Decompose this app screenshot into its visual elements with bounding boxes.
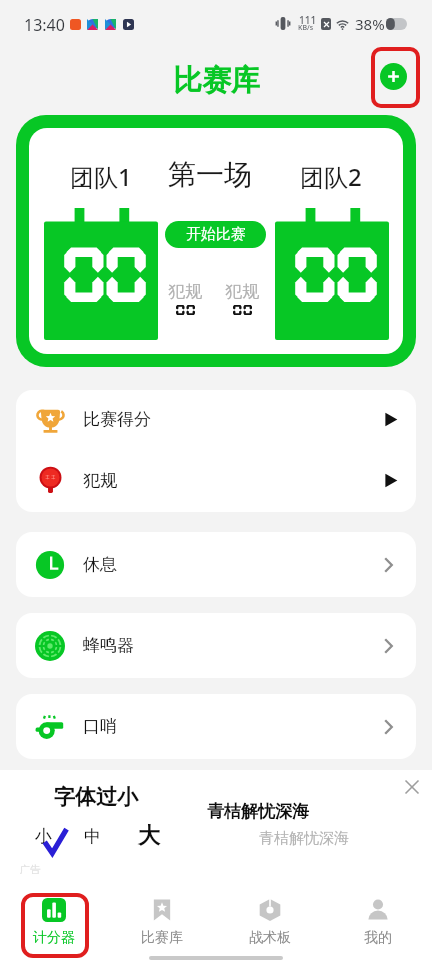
button[interactable]	[44, 208, 158, 340]
staticText: 字体过小	[54, 784, 138, 810]
button[interactable]: Close ad	[404, 779, 420, 795]
staticText: 青桔解忧深海	[259, 829, 349, 848]
staticText: 比赛库	[173, 62, 260, 99]
button[interactable]: 开始比赛	[165, 221, 266, 248]
button[interactable]: 口哨	[16, 694, 416, 759]
button[interactable]: 蜂鸣器	[16, 613, 416, 678]
staticText: 青桔解忧深海	[207, 801, 309, 822]
button[interactable]: 休息	[16, 532, 416, 597]
staticText: KB/s	[298, 23, 314, 33]
staticText: 小	[35, 826, 52, 847]
button[interactable]: 我的	[324, 874, 432, 947]
staticText: 13:40	[24, 14, 65, 36]
staticText: 比赛库	[141, 929, 183, 947]
button[interactable]: 比赛得分	[16, 390, 416, 448]
staticText: 犯规	[83, 470, 117, 491]
staticText: 计分器	[33, 929, 75, 947]
staticText: 团队1	[70, 160, 132, 193]
staticText: 38%	[355, 14, 385, 34]
staticText: 蜂鸣器	[83, 635, 134, 656]
staticText: 犯规	[168, 281, 202, 302]
staticText: 战术板	[249, 929, 291, 947]
staticText: 团队2	[300, 160, 362, 193]
button[interactable]: Add new match	[380, 63, 407, 90]
staticText: 中	[84, 826, 101, 847]
button[interactable]: 犯规	[219, 281, 265, 315]
button[interactable]	[275, 208, 389, 340]
staticText: 口哨	[83, 716, 117, 737]
staticText: 第一场	[168, 157, 252, 192]
staticText: 休息	[83, 554, 117, 575]
staticText: 犯规	[225, 281, 259, 302]
button[interactable]: 团队1	[29, 128, 403, 354]
button[interactable]: 字体过小	[0, 770, 432, 874]
button[interactable]: 犯规	[16, 448, 416, 512]
staticText: 开始比赛	[186, 225, 246, 244]
button[interactable]: 比赛库	[108, 874, 216, 947]
button[interactable]: 犯规	[162, 281, 208, 315]
staticText: 111	[299, 13, 317, 27]
staticText: 广告	[20, 863, 40, 876]
staticText: 大	[138, 822, 160, 850]
staticText: 比赛得分	[83, 409, 151, 430]
button[interactable]: 战术板	[216, 874, 324, 947]
button[interactable]: 计分器	[0, 874, 108, 947]
staticText: 我的	[364, 929, 392, 947]
